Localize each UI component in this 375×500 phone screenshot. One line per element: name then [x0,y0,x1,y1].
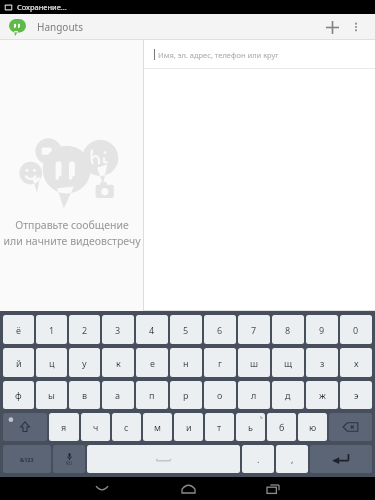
button[interactable]: Enter [310,445,372,473]
button[interactable]: и [174,413,203,441]
staticText: ш [250,357,259,369]
staticText: ц [49,357,55,369]
staticText: с [124,421,129,433]
staticText: 7 [251,324,257,336]
button[interactable]: я [49,413,79,441]
button[interactable]: г [204,348,236,377]
button[interactable]: 7 [238,315,270,344]
staticText: и [186,421,192,433]
staticText: 1 [49,324,55,336]
button[interactable]: б [267,413,296,441]
button[interactable]: Home [174,477,202,500]
button[interactable]: ю [298,413,327,441]
staticText: 4 [149,324,155,336]
staticText: й [16,357,22,369]
button[interactable]: Shift [3,413,47,441]
button[interactable]: . [242,445,274,473]
button[interactable]: 6 [204,315,236,344]
button[interactable]: х [340,348,372,377]
button[interactable]: 0 [340,315,372,344]
button[interactable]: 9 [306,315,338,344]
staticText: у [82,357,87,369]
staticText: &123 [20,456,34,463]
button[interactable]: Voice input [53,445,85,473]
button[interactable]: 1 [36,315,67,344]
button[interactable]: а [102,381,134,409]
button[interactable]: э [340,381,372,409]
button[interactable] [8,18,27,37]
staticText: в [82,389,88,401]
button[interactable]: в [69,381,100,409]
staticText: н [183,357,189,369]
staticText: о [217,389,223,401]
staticText: э [354,389,359,401]
staticText: 2 [82,324,88,336]
staticText: ы [48,389,55,401]
staticText: а [115,389,121,401]
button[interactable]: ф [3,381,34,409]
button[interactable]: Hide keyboard [88,477,116,500]
staticText: Hangouts [37,20,83,34]
button[interactable]: п [136,381,168,409]
staticText: Отправьте сообщение [15,218,129,232]
staticText: 3 [115,324,121,336]
button[interactable]: &123 [3,445,51,473]
button[interactable]: с [112,413,141,441]
staticText: ь [248,421,253,433]
button[interactable]: 8 [272,315,304,344]
button[interactable]: Recent apps [259,477,287,500]
staticText: 0 [353,324,359,336]
button[interactable]: Backspace [329,413,372,441]
staticText: ю [309,421,317,433]
staticText: е [150,357,155,369]
button[interactable]: New conversation [319,14,345,40]
button[interactable]: 5 [170,315,202,344]
button[interactable]: Имя, эл. адрес, телефон или круг [144,40,375,68]
staticText: RU [66,460,73,466]
button[interactable]: е [136,348,168,377]
staticText: ъ [260,414,263,420]
button[interactable]: р [170,381,202,409]
staticText: 6 [217,324,223,336]
button[interactable]: More options [345,16,367,38]
staticText: д [285,389,291,401]
button[interactable]: к [102,348,134,377]
staticText: ч [93,421,99,433]
staticText: з [320,357,325,369]
button[interactable]: ш [238,348,270,377]
staticText: или начните видеовстречу [3,234,141,248]
button[interactable]: ё [3,315,34,344]
button[interactable]: у [69,348,100,377]
button[interactable]: 2 [69,315,100,344]
button[interactable]: щ [272,348,304,377]
button[interactable]: ч [81,413,110,441]
button[interactable]: й [3,348,34,377]
button[interactable]: Space [87,445,240,473]
staticText: р [183,389,189,401]
button[interactable]: н [170,348,202,377]
button[interactable]: ы [36,381,67,409]
button[interactable]: м [143,413,172,441]
staticText: Имя, эл. адрес, телефон или круг [158,50,279,60]
staticText: х [354,357,359,369]
button[interactable]: т [205,413,234,441]
staticText: щ [284,357,293,369]
staticText: 9 [319,324,325,336]
staticText: , [291,453,294,465]
button[interactable]: ж [306,381,338,409]
staticText: я [61,421,67,433]
button[interactable]: 4 [136,315,168,344]
button[interactable]: з [306,348,338,377]
staticText: п [149,389,155,401]
staticText: м [154,421,161,433]
button[interactable]: л [238,381,270,409]
button[interactable]: , [276,445,308,473]
button[interactable]: о [204,381,236,409]
staticText: г [218,357,222,369]
button[interactable]: 3 [102,315,134,344]
button[interactable]: ь [236,413,265,441]
staticText: . [257,453,260,465]
staticText: 5 [183,324,189,336]
button[interactable]: д [272,381,304,409]
button[interactable]: ц [36,348,67,377]
